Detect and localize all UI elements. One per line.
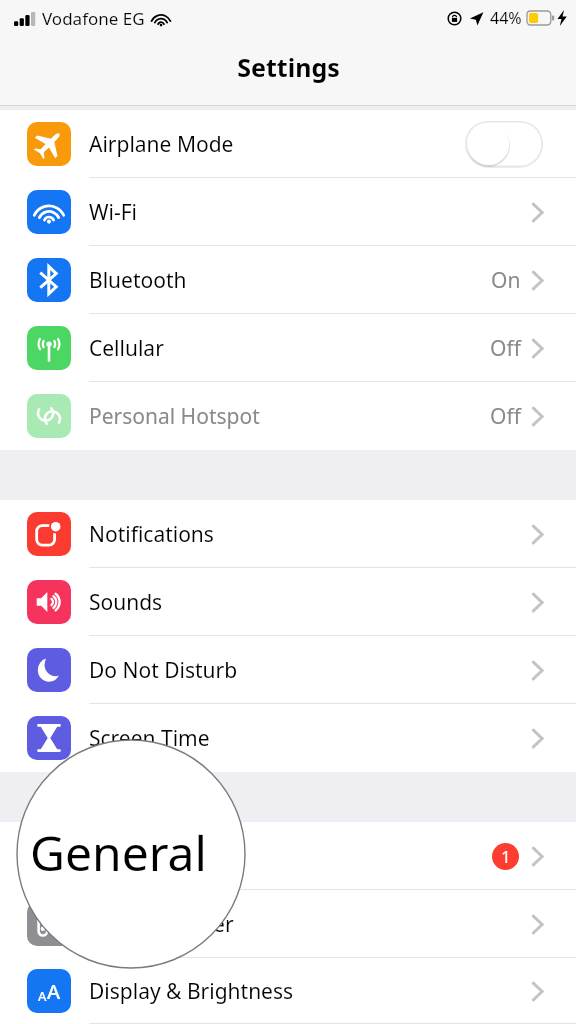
staticText: Do Not Disturb	[89, 656, 238, 685]
button[interactable]: Airplane Mode	[0, 110, 576, 178]
button[interactable]: Bluetooth	[0, 246, 576, 314]
staticText: Airplane Mode	[89, 130, 234, 159]
staticText: On	[491, 266, 521, 295]
staticText: Display & Brightness	[89, 977, 294, 1006]
staticText: Off	[490, 402, 521, 431]
button[interactable]: Sounds	[0, 568, 576, 636]
staticText: Off	[490, 334, 521, 363]
staticText: Control Center	[89, 910, 234, 939]
staticText: A	[47, 978, 61, 1005]
staticText: Bluetooth	[89, 266, 187, 295]
button[interactable]: General	[0, 822, 576, 890]
staticText: Screen Time	[89, 724, 210, 753]
staticText: General	[30, 820, 207, 885]
staticText: General	[89, 842, 167, 871]
staticText: 1	[501, 845, 511, 868]
staticText: Sounds	[89, 588, 163, 617]
staticText: Wi-Fi	[89, 198, 138, 227]
staticText: Personal Hotspot	[89, 402, 260, 431]
staticText: Cellular	[89, 334, 164, 363]
staticText: Notifications	[89, 520, 214, 549]
button[interactable]: Do Not Disturb	[0, 636, 576, 704]
button[interactable]: A	[0, 958, 576, 1024]
button[interactable]: Control Center	[0, 890, 576, 958]
button[interactable]: Wi-Fi	[0, 178, 576, 246]
staticText: 44%	[490, 7, 522, 29]
staticText: Settings	[237, 50, 340, 84]
button[interactable]: Screen Time	[0, 704, 576, 772]
staticText: A	[38, 987, 47, 1005]
button[interactable]: Cellular	[0, 314, 576, 382]
button[interactable]: Personal Hotspot	[0, 382, 576, 450]
button[interactable]: Notifications	[0, 500, 576, 568]
staticText: Vodafone EG	[42, 7, 145, 30]
